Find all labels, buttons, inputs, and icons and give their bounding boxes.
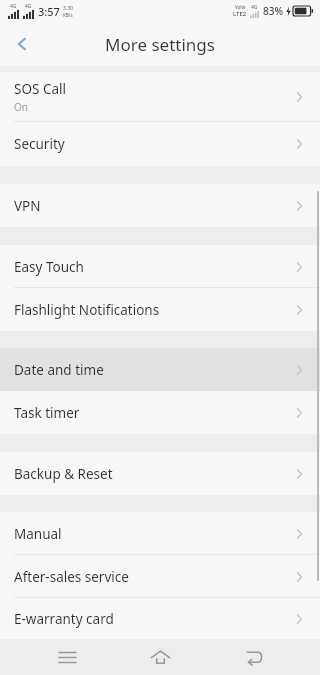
staticText: 3:57: [38, 4, 60, 19]
button[interactable]: Security: [0, 122, 320, 166]
button[interactable]: VPN: [0, 184, 320, 227]
staticText: 4G: [25, 3, 32, 10]
staticText: 3.30: [63, 5, 73, 12]
staticText: On: [14, 100, 28, 114]
button[interactable]: SOS Call: [0, 72, 320, 122]
staticText: E-warranty card: [14, 610, 114, 628]
staticText: SOS Call: [14, 80, 66, 98]
button[interactable]: Task timer: [0, 391, 320, 434]
staticText: Manual: [14, 525, 62, 543]
staticText: Flashlight Notifications: [14, 301, 160, 319]
button[interactable]: After-sales service: [0, 555, 320, 598]
staticText: Security: [14, 135, 65, 153]
button[interactable]: Menu: [40, 639, 94, 675]
button[interactable]: Home: [133, 639, 187, 675]
staticText: After-sales service: [14, 568, 129, 586]
staticText: 83%: [263, 4, 283, 18]
button[interactable]: Backup & Reset: [0, 452, 320, 495]
button[interactable]: Back: [0, 22, 44, 66]
staticText: KB/s: [63, 12, 73, 18]
button[interactable]: Flashlight Notifications: [0, 288, 320, 331]
button[interactable]: E-warranty card: [0, 598, 320, 639]
button[interactable]: Easy Touch: [0, 245, 320, 288]
staticText: VPN: [14, 197, 41, 215]
staticText: Backup & Reset: [14, 465, 113, 483]
staticText: Date and time: [14, 361, 104, 379]
button[interactable]: Back: [227, 639, 281, 675]
staticText: 4G: [10, 3, 17, 10]
button[interactable]: Manual: [0, 512, 320, 555]
staticText: 4G: [251, 4, 258, 11]
staticText: Volte: [235, 4, 246, 10]
staticText: Task timer: [14, 404, 80, 422]
button[interactable]: Date and time: [0, 348, 320, 391]
staticText: Easy Touch: [14, 258, 84, 276]
staticText: LTE2: [233, 10, 247, 18]
staticText: More settings: [105, 33, 215, 56]
